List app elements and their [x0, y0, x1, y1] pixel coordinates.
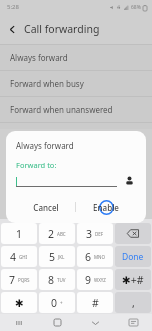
button[interactable]: Enable [76, 196, 136, 218]
button[interactable]: ✱ [1, 292, 37, 313]
staticText: ✱ [15, 297, 24, 309]
button[interactable]: , [115, 292, 151, 313]
button[interactable]: Always forward [0, 45, 152, 70]
button[interactable]: 6 [77, 246, 113, 267]
staticText: GHI [19, 254, 28, 260]
staticText: 0 [51, 296, 58, 310]
button[interactable]: Back [0, 17, 24, 41]
button[interactable]: Recents [0, 314, 38, 331]
button[interactable]: Backspace [115, 223, 151, 244]
button[interactable] [16, 175, 117, 187]
button[interactable]: Change keyboard [114, 314, 152, 331]
button[interactable]: Hide keyboard [76, 314, 114, 331]
staticText: Forward to: [16, 160, 57, 170]
staticText: , [132, 296, 135, 310]
button[interactable]: 0 [39, 292, 75, 313]
button[interactable]: Cancel [16, 196, 75, 218]
staticText: 6 [85, 250, 92, 264]
button[interactable]: 7 [1, 269, 37, 290]
staticText: 7 [9, 273, 16, 287]
staticText: DEF [95, 231, 104, 237]
staticText: 1 [16, 227, 23, 241]
button[interactable]: 5 [39, 246, 75, 267]
staticText: Always forward [16, 140, 74, 151]
staticText: # [92, 296, 99, 310]
staticText: PQRS [18, 277, 30, 283]
staticText: MNO [94, 254, 106, 260]
button[interactable]: 1 [1, 223, 37, 244]
staticText: Cancel [33, 202, 59, 213]
button[interactable]: Forward when unanswered [0, 97, 152, 122]
staticText: 5 [49, 250, 56, 264]
staticText: 3 [86, 227, 93, 241]
staticText: Enable [93, 202, 119, 213]
button[interactable]: # [77, 292, 113, 313]
staticText: 4 [10, 250, 17, 264]
button[interactable]: Pick contact [123, 174, 136, 187]
button[interactable]: 4 [1, 246, 37, 267]
staticText: 68% [131, 4, 141, 11]
staticText: ✱+# [122, 273, 144, 287]
staticText: 9 [85, 273, 92, 287]
button[interactable]: 8 [39, 269, 75, 290]
staticText: JKL [58, 254, 65, 260]
staticText: Always forward [10, 52, 68, 63]
button[interactable]: Home [38, 314, 76, 331]
staticText: Done [122, 251, 144, 263]
staticText: WXYZ [94, 277, 106, 283]
staticText: 8 [48, 273, 55, 287]
button[interactable]: 3 [77, 223, 113, 244]
staticText: 2 [48, 227, 55, 241]
button[interactable]: 9 [77, 269, 113, 290]
button[interactable]: Forward when busy [0, 71, 152, 96]
staticText: + [60, 300, 63, 306]
button[interactable]: Done [115, 246, 151, 267]
button[interactable]: ✱+# [115, 269, 151, 290]
staticText: Call forwarding [24, 22, 100, 36]
staticText: Forward when unanswered [10, 104, 113, 115]
staticText: 5:28 [7, 3, 19, 11]
staticText: Forward when busy [10, 78, 84, 89]
staticText: ABC [57, 231, 66, 237]
staticText: TUV [57, 277, 66, 283]
button[interactable]: 2 [39, 223, 75, 244]
